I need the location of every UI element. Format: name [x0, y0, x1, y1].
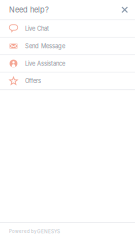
staticText: Send Message	[25, 42, 65, 50]
button[interactable]: Close	[118, 3, 132, 17]
button[interactable]: Send Message	[0, 38, 135, 55]
staticText: Powered by	[9, 229, 36, 234]
button[interactable]: Live Chat	[0, 20, 135, 38]
button[interactable]: Offers	[0, 73, 135, 90]
staticText: GENESYS	[36, 229, 60, 234]
button[interactable]: Live Assistance	[0, 55, 135, 73]
staticText: Offers	[25, 77, 41, 84]
staticText: Live Assistance	[25, 60, 65, 67]
staticText: Need help?	[9, 5, 49, 14]
staticText: Live Chat	[25, 25, 49, 32]
